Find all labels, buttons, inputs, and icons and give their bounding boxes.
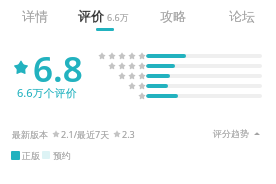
staticText: 论坛 <box>229 8 255 24</box>
button[interactable]: 详情 <box>0 0 69 31</box>
staticText: 攻略 <box>160 8 186 24</box>
staticText: 6.6万个评价 <box>17 85 77 100</box>
staticText: 正版 <box>22 150 40 161</box>
button[interactable]: 评分趋势 <box>213 128 260 139</box>
staticText: 2.1/最近7天 <box>61 128 110 140</box>
button[interactable]: 论坛 <box>207 0 276 31</box>
staticText: 评分趋势 <box>213 128 249 139</box>
staticText: 详情 <box>22 8 48 24</box>
staticText: 6.8 <box>33 45 83 93</box>
button[interactable]: 攻略 <box>138 0 207 31</box>
button[interactable]: 评价 <box>69 0 138 31</box>
staticText: 评价 <box>78 8 104 24</box>
staticText: 2.3 <box>122 128 135 140</box>
staticText: 6.6万 <box>107 11 129 23</box>
staticText: 最新版本 <box>12 129 48 140</box>
staticText: 预约 <box>53 150 71 161</box>
